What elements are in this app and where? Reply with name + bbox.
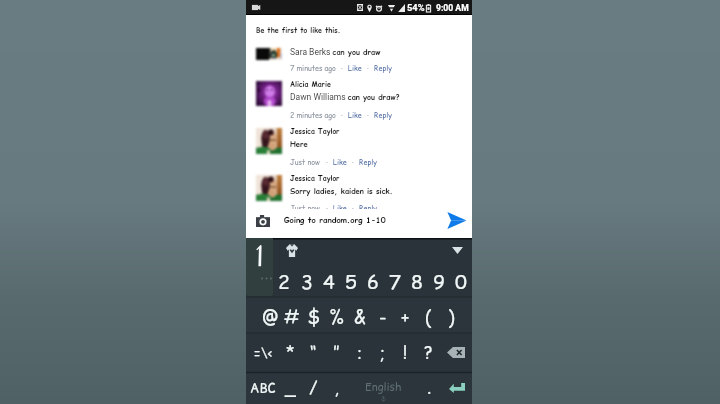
staticText: + [401,305,410,330]
staticText: $ [308,305,321,330]
staticText: 54% [407,2,425,13]
button[interactable]: 5 [340,258,362,297]
button[interactable]: Reply [359,157,378,167]
button[interactable]: 7 [384,258,406,297]
button[interactable]: / [302,372,325,404]
staticText: , [334,376,339,400]
button[interactable]: + [394,297,417,333]
button[interactable]: * [280,333,302,372]
staticText: · [326,157,328,167]
button[interactable]: =\< [246,333,280,372]
button[interactable]: ” [325,333,348,372]
button[interactable]: 4 [318,258,340,297]
button[interactable]: 3 [295,258,318,297]
staticText: Be the first to like this. [256,26,341,36]
button[interactable]: ) [440,297,463,333]
staticText: =\< [254,344,273,362]
button[interactable]: ( [417,297,440,333]
staticText: Alicia Marie [290,80,331,90]
staticText: English [365,379,402,394]
staticText: * [286,341,296,365]
staticText: / [309,376,318,400]
staticText: . [427,376,432,400]
staticText: ; [380,341,386,365]
staticText: · [341,63,343,73]
staticText: · [341,110,343,120]
button[interactable]: , [325,372,348,404]
staticText: Jessica Taylor [290,174,340,184]
button[interactable]: $ [303,297,325,333]
staticText: # [284,305,300,330]
staticText: 4 [323,268,335,295]
button[interactable]: Send [447,212,466,229]
staticText: _ [285,376,296,400]
staticText: ? [424,341,433,365]
staticText: 3 [301,268,313,295]
staticText: : [357,341,363,365]
button[interactable]: # [281,297,303,333]
staticText: 5 [345,268,357,295]
staticText: · [367,63,369,73]
button[interactable]: Like [348,63,362,73]
button[interactable]: ; [371,333,394,372]
button[interactable]: _ [279,372,302,404]
staticText: · [326,203,328,213]
button[interactable]: . [418,372,441,404]
button[interactable]: Profile photo [256,175,282,201]
button[interactable]: Stickers [286,244,298,257]
staticText: ABC [250,379,276,397]
button[interactable]: Reply [374,63,393,73]
button[interactable]: % [325,297,348,333]
staticText: Sara Berks can you draw [290,47,381,57]
button[interactable]: 9 [428,258,450,297]
staticText: 9 [433,268,445,295]
staticText: & [354,305,366,330]
staticText: “ [310,341,317,365]
button[interactable]: 8 [406,258,428,297]
staticText: 2 [278,268,290,295]
button[interactable]: 6 [362,258,384,297]
button[interactable]: 0 [450,258,472,297]
staticText: % [329,305,344,330]
button[interactable]: Like [333,157,347,167]
staticText: Jessica Taylor [290,127,340,137]
staticText: @ [262,305,279,330]
button[interactable]: Profile photo [256,128,282,154]
staticText: 1 [256,268,265,295]
staticText: 2 minutes ago [290,110,336,120]
button[interactable]: ABC [246,372,279,404]
staticText: Going to random.org 1-10 [284,215,386,226]
staticText: · [367,110,369,120]
staticText: Just now [290,157,321,167]
button[interactable]: Enter [441,372,472,404]
button[interactable]: ? [417,333,440,372]
button[interactable]: Profile photo [256,81,282,106]
button[interactable]: Reply [374,110,393,120]
staticText: · [352,203,354,213]
button[interactable]: : [348,333,371,372]
button[interactable]: Profile photo [256,48,282,60]
button[interactable]: Reply [359,203,378,213]
staticText: 7 [389,268,401,295]
staticText: 0 [455,268,467,295]
button[interactable]: Like [348,110,362,120]
button[interactable]: - [371,297,394,333]
staticText: · [352,157,354,167]
button[interactable]: Backspace [440,333,472,372]
button[interactable]: English [348,372,418,404]
staticText: Sorry ladies, kaiden is sick. [290,186,393,196]
button[interactable]: 2 [272,258,295,297]
staticText: Just now [290,203,321,213]
button[interactable]: Like [333,203,347,213]
staticText: 7 minutes ago [290,63,336,73]
button[interactable]: ! [394,333,417,372]
button[interactable]: “ [302,333,325,372]
button[interactable]: Camera [256,215,270,227]
staticText: ( [425,305,432,330]
button[interactable]: & [348,297,371,333]
staticText: Here [290,139,308,149]
staticText: ! [403,341,408,365]
button[interactable]: Expand suggestions [452,247,463,254]
button[interactable]: 1 [249,258,272,297]
button[interactable]: @ [259,297,281,333]
